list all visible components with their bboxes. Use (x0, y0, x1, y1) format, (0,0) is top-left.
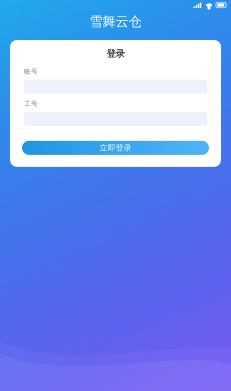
staticText: 账号 (24, 67, 38, 76)
staticText: 工号 (24, 100, 38, 108)
staticText: 登录 (106, 48, 124, 59)
staticText: 雪舞云仓 (89, 13, 141, 30)
button[interactable]: 立即登录 (22, 141, 209, 155)
staticText: 立即登录 (99, 143, 131, 153)
